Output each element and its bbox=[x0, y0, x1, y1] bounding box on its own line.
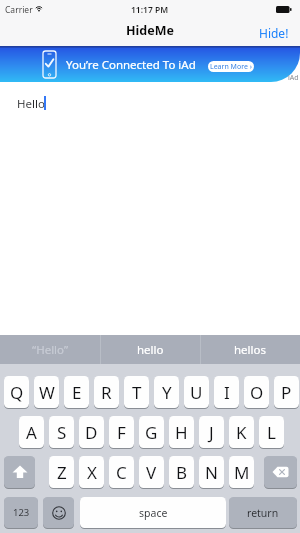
button[interactable]: F bbox=[109, 416, 134, 448]
button[interactable]: space bbox=[80, 497, 226, 528]
button[interactable]: Learn More › bbox=[208, 61, 254, 72]
staticText: O bbox=[250, 381, 264, 404]
button[interactable] bbox=[264, 456, 297, 488]
button[interactable]: V bbox=[139, 456, 164, 488]
staticText: F bbox=[117, 421, 126, 444]
button[interactable]: U bbox=[184, 376, 209, 408]
button[interactable]: Hide! bbox=[253, 23, 295, 43]
button[interactable]: You’re Connected To iAd bbox=[0, 46, 300, 82]
staticText: Learn More › bbox=[210, 62, 252, 72]
staticText: L bbox=[267, 421, 276, 444]
staticText: hello bbox=[137, 342, 164, 358]
button[interactable]: K bbox=[229, 416, 254, 448]
staticText: K bbox=[236, 421, 247, 444]
button[interactable]: B bbox=[169, 456, 194, 488]
staticText: space bbox=[139, 506, 168, 520]
button[interactable]: R bbox=[94, 376, 119, 408]
staticText: M bbox=[234, 461, 250, 484]
button[interactable]: hellos bbox=[200, 335, 300, 364]
button[interactable]: 123 bbox=[4, 497, 38, 528]
staticText: Y bbox=[162, 381, 172, 404]
staticText: You’re Connected To iAd bbox=[66, 57, 196, 73]
staticText: P bbox=[281, 381, 292, 404]
staticText: E bbox=[72, 381, 82, 404]
staticText: 123 bbox=[13, 506, 30, 519]
button[interactable] bbox=[43, 497, 74, 528]
staticText: J bbox=[209, 421, 214, 444]
button[interactable]: S bbox=[49, 416, 74, 448]
button[interactable]: C bbox=[109, 456, 134, 488]
button[interactable]: N bbox=[199, 456, 224, 488]
staticText: V bbox=[146, 461, 157, 484]
button[interactable]: A bbox=[19, 416, 44, 448]
button[interactable]: X bbox=[79, 456, 104, 488]
button[interactable]: L bbox=[259, 416, 284, 448]
staticText: R bbox=[101, 381, 112, 404]
button[interactable]: hello bbox=[100, 335, 200, 364]
button[interactable]: I bbox=[214, 376, 239, 408]
staticText: “Hello” bbox=[32, 342, 69, 358]
staticText: X bbox=[87, 461, 97, 484]
staticText: W bbox=[39, 381, 55, 404]
button[interactable]: M bbox=[229, 456, 254, 488]
staticText: Hello bbox=[17, 96, 45, 112]
button[interactable]: G bbox=[139, 416, 164, 448]
button[interactable]: J bbox=[199, 416, 224, 448]
button[interactable]: Z bbox=[49, 456, 74, 488]
staticText: N bbox=[205, 461, 218, 484]
staticText: S bbox=[57, 421, 67, 444]
staticText: T bbox=[132, 381, 142, 404]
button[interactable]: D bbox=[79, 416, 104, 448]
staticText: Q bbox=[10, 381, 24, 404]
staticText: iAd bbox=[288, 73, 299, 83]
button[interactable] bbox=[4, 456, 35, 488]
staticText: U bbox=[190, 381, 203, 404]
staticText: D bbox=[85, 421, 98, 444]
staticText: B bbox=[176, 461, 188, 484]
button[interactable]: T bbox=[124, 376, 149, 408]
staticText: C bbox=[116, 461, 127, 484]
staticText: G bbox=[145, 421, 158, 444]
staticText: 11:17 PM bbox=[131, 4, 169, 16]
staticText: return bbox=[247, 506, 279, 520]
staticText: hellos bbox=[234, 342, 266, 358]
button[interactable]: O bbox=[244, 376, 269, 408]
button[interactable]: P bbox=[274, 376, 299, 408]
staticText: Carrier bbox=[5, 4, 33, 16]
staticText: H bbox=[175, 421, 188, 444]
staticText: I bbox=[224, 381, 230, 404]
staticText: A bbox=[26, 421, 37, 444]
button[interactable]: H bbox=[169, 416, 194, 448]
staticText: Z bbox=[57, 461, 67, 484]
button[interactable]: return bbox=[229, 497, 297, 528]
button[interactable]: “Hello” bbox=[0, 335, 100, 364]
button[interactable]: E bbox=[64, 376, 89, 408]
staticText: HideMe bbox=[126, 22, 174, 39]
staticText: Hide! bbox=[259, 25, 289, 41]
button[interactable]: W bbox=[34, 376, 59, 408]
button[interactable]: Q bbox=[4, 376, 29, 408]
button[interactable]: Y bbox=[154, 376, 179, 408]
